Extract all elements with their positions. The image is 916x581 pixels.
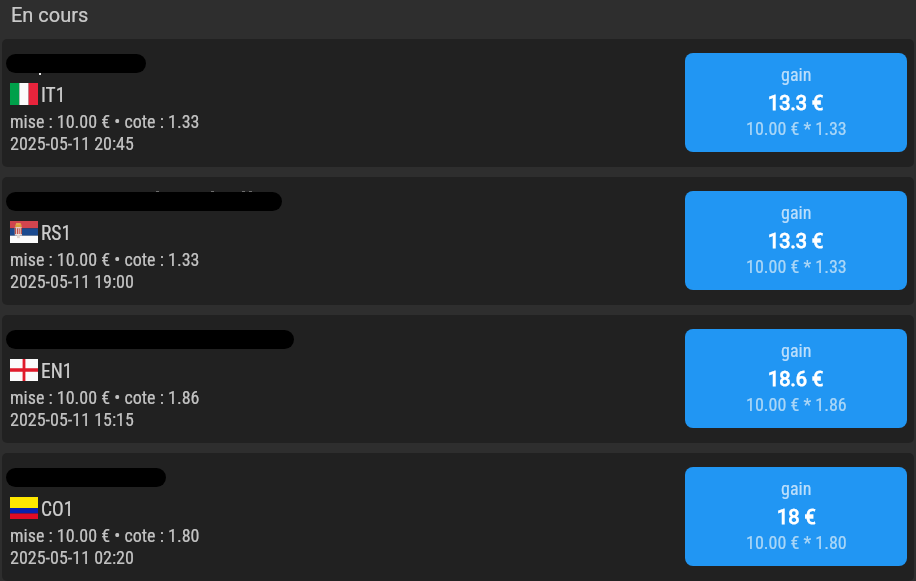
staticText: mise : 10.00 € • cote : 1.33 — [10, 249, 200, 270]
staticText: mise : 10.00 € • cote : 1.80 — [10, 525, 200, 546]
button[interactable]: gain — [685, 467, 907, 566]
staticText: 2025-05-11 19:00 — [10, 271, 134, 292]
staticText: CO1 — [41, 498, 74, 521]
button[interactable]: gain — [685, 191, 907, 290]
staticText: 13.3 € — [768, 91, 824, 114]
button[interactable]: EN1 — [2, 315, 914, 443]
button[interactable]: gain — [685, 329, 907, 428]
staticText: 18.6 € — [768, 367, 824, 390]
staticText: 2025-05-11 02:20 — [10, 547, 134, 568]
staticText: IT1 — [41, 84, 66, 107]
staticText: gain — [781, 202, 812, 223]
button[interactable]: IT1 — [2, 39, 914, 167]
staticText: 10.00 € * 1.86 — [746, 394, 847, 415]
staticText: gain — [781, 478, 812, 499]
staticText: 10.00 € * 1.33 — [746, 256, 847, 277]
button[interactable]: RS1 — [2, 177, 914, 305]
staticText: 2025-05-11 20:45 — [10, 133, 134, 154]
staticText: 13.3 € — [768, 229, 824, 252]
staticText: RS1 — [41, 222, 72, 245]
button[interactable]: CO1 — [2, 453, 914, 581]
staticText: gain — [781, 64, 812, 85]
staticText: mise : 10.00 € • cote : 1.86 — [10, 387, 200, 408]
staticText: En cours — [11, 3, 89, 26]
staticText: gain — [781, 340, 812, 361]
staticText: 2025-05-11 15:15 — [10, 409, 134, 430]
button[interactable]: gain — [685, 53, 907, 152]
staticText: 10.00 € * 1.80 — [746, 532, 847, 553]
staticText: 10.00 € * 1.33 — [746, 118, 847, 139]
staticText: mise : 10.00 € • cote : 1.33 — [10, 111, 200, 132]
staticText: 18 € — [777, 505, 816, 528]
staticText: EN1 — [41, 360, 73, 383]
